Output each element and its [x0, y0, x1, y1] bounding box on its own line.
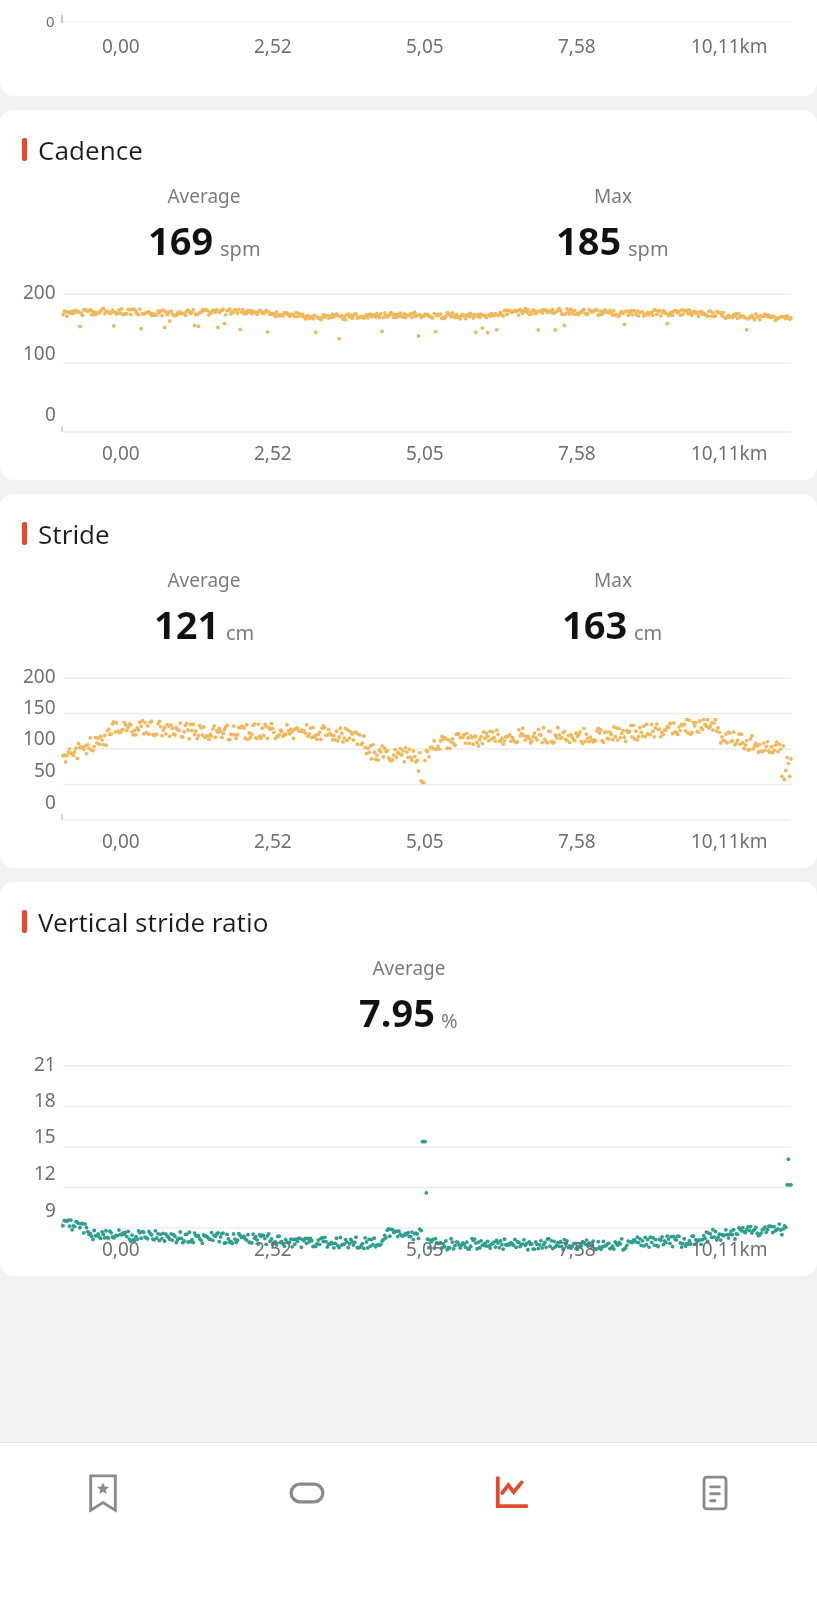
staticText: 2,52: [254, 1236, 292, 1262]
staticText: 0: [46, 11, 55, 31]
button[interactable]: Stride: [0, 494, 817, 868]
staticText: Stride: [38, 516, 110, 551]
button[interactable]: Favorites: [0, 1443, 205, 1600]
staticText: Vertical stride ratio: [38, 904, 269, 939]
staticText: %: [441, 1007, 458, 1034]
button[interactable]: Activity: [205, 1443, 409, 1600]
staticText: Max: [594, 183, 632, 209]
staticText: 21: [34, 1051, 56, 1077]
staticText: Average: [167, 567, 241, 593]
staticText: 5,05: [406, 1236, 444, 1262]
staticText: 7,58: [558, 1236, 596, 1262]
staticText: 121: [154, 598, 220, 650]
staticText: 5,05: [406, 33, 444, 59]
staticText: Max: [594, 567, 632, 593]
staticText: 163: [562, 598, 628, 650]
button[interactable]: Charts: [409, 1443, 613, 1600]
staticText: 7,58: [558, 33, 596, 59]
staticText: 18: [34, 1087, 56, 1113]
staticText: 200: [23, 279, 56, 305]
staticText: 0,00: [102, 828, 140, 854]
staticText: 0: [45, 789, 56, 815]
staticText: 0,00: [102, 33, 140, 59]
staticText: cm: [226, 619, 255, 646]
staticText: cm: [634, 619, 663, 646]
staticText: 50: [34, 757, 56, 783]
staticText: 185: [556, 214, 622, 266]
staticText: 0: [45, 401, 56, 427]
staticText: Average: [372, 955, 446, 981]
staticText: 9: [45, 1197, 56, 1223]
staticText: 10,11km: [691, 1236, 768, 1262]
staticText: 2,52: [254, 828, 292, 854]
button[interactable]: Cadence: [0, 110, 817, 480]
staticText: 12: [34, 1160, 56, 1186]
staticText: 150: [23, 694, 56, 720]
staticText: 5,05: [406, 440, 444, 466]
staticText: 7,58: [558, 440, 596, 466]
staticText: Average: [167, 183, 241, 209]
staticText: 100: [23, 340, 56, 366]
staticText: spm: [220, 235, 261, 262]
staticText: 200: [23, 663, 56, 689]
button[interactable]: Details: [613, 1443, 817, 1600]
staticText: 2,52: [254, 33, 292, 59]
staticText: 7,58: [558, 828, 596, 854]
staticText: 10,11km: [691, 33, 768, 59]
staticText: 7.95: [359, 986, 435, 1038]
staticText: spm: [628, 235, 669, 262]
staticText: 2,52: [254, 440, 292, 466]
staticText: 10,11km: [691, 828, 768, 854]
button[interactable]: Vertical stride ratio: [0, 882, 817, 1276]
staticText: 169: [148, 214, 214, 266]
staticText: 0,00: [102, 440, 140, 466]
staticText: Cadence: [38, 132, 143, 167]
staticText: 100: [23, 725, 56, 751]
staticText: 0,00: [102, 1236, 140, 1262]
staticText: 10,11km: [691, 440, 768, 466]
staticText: 15: [34, 1123, 56, 1149]
staticText: 5,05: [406, 828, 444, 854]
